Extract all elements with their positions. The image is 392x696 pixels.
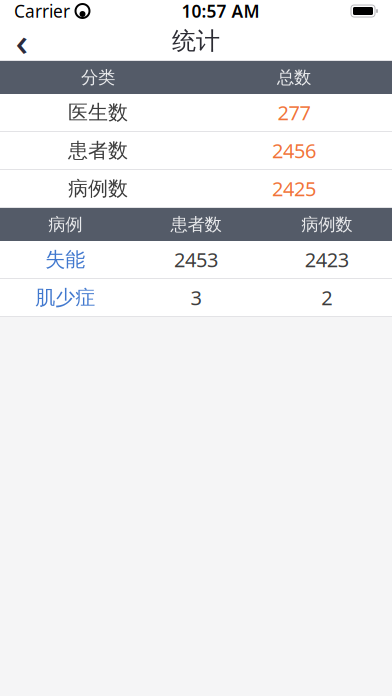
staticText: 3 bbox=[190, 284, 201, 311]
staticText: Carrier bbox=[14, 0, 70, 22]
staticText: 失能 bbox=[45, 247, 85, 272]
staticText: 2456 bbox=[272, 137, 316, 164]
button[interactable]: 失能 bbox=[0, 241, 392, 279]
button[interactable]: 病例数 bbox=[0, 170, 392, 208]
button[interactable]: 医生数 bbox=[0, 94, 392, 132]
staticText: 病例 bbox=[48, 214, 82, 235]
staticText: 病例数 bbox=[68, 176, 128, 201]
staticText: 2423 bbox=[305, 246, 349, 273]
staticText: 医生数 bbox=[68, 100, 128, 125]
staticText: 病例数 bbox=[301, 214, 352, 235]
button[interactable]: 患者数 bbox=[0, 132, 392, 170]
staticText: 患者数 bbox=[68, 138, 128, 163]
staticText: 2425 bbox=[272, 175, 316, 202]
staticText: 277 bbox=[277, 99, 310, 126]
staticText: 总数 bbox=[277, 67, 311, 88]
button[interactable]: Back bbox=[0, 22, 44, 60]
staticText: 分类 bbox=[81, 67, 115, 88]
button[interactable]: 肌少症 bbox=[0, 279, 392, 317]
staticText: 2 bbox=[321, 284, 332, 311]
staticText: 患者数 bbox=[170, 214, 221, 235]
staticText: 肌少症 bbox=[35, 285, 95, 310]
staticText: 2453 bbox=[174, 246, 218, 273]
staticText: ‹ bbox=[15, 15, 28, 67]
staticText: 10:57 AM bbox=[181, 0, 259, 22]
staticText: 统计 bbox=[172, 26, 220, 56]
